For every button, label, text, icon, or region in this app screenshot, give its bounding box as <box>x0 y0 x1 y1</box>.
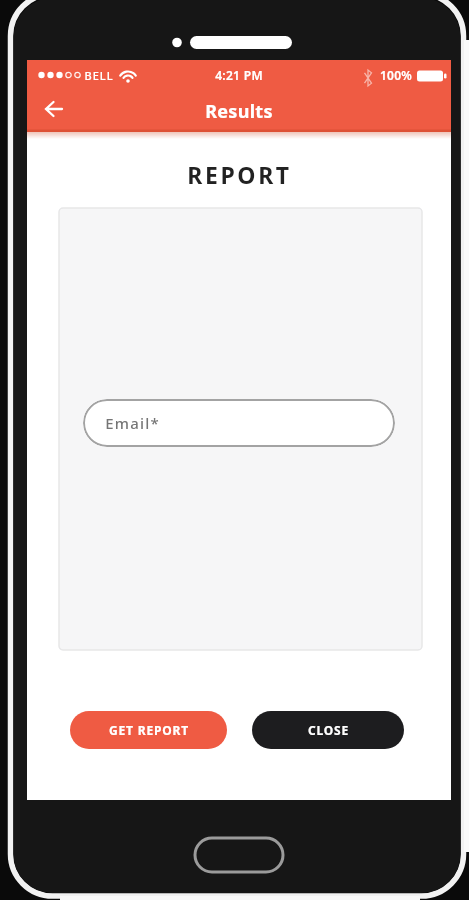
button[interactable] <box>33 92 77 128</box>
staticText: REPORT <box>187 159 292 190</box>
staticText: BELL <box>84 68 114 83</box>
staticText: Results <box>205 99 273 124</box>
staticText: CLOSE <box>308 722 349 738</box>
staticText: 4:21 PM <box>215 67 263 83</box>
button[interactable]: Email* <box>83 399 395 447</box>
button[interactable]: GET REPORT <box>70 711 227 749</box>
staticText: GET REPORT <box>109 722 189 738</box>
button[interactable] <box>195 838 283 872</box>
staticText: Email* <box>105 413 160 433</box>
staticText: 100% <box>380 67 412 83</box>
button[interactable]: CLOSE <box>252 711 404 749</box>
